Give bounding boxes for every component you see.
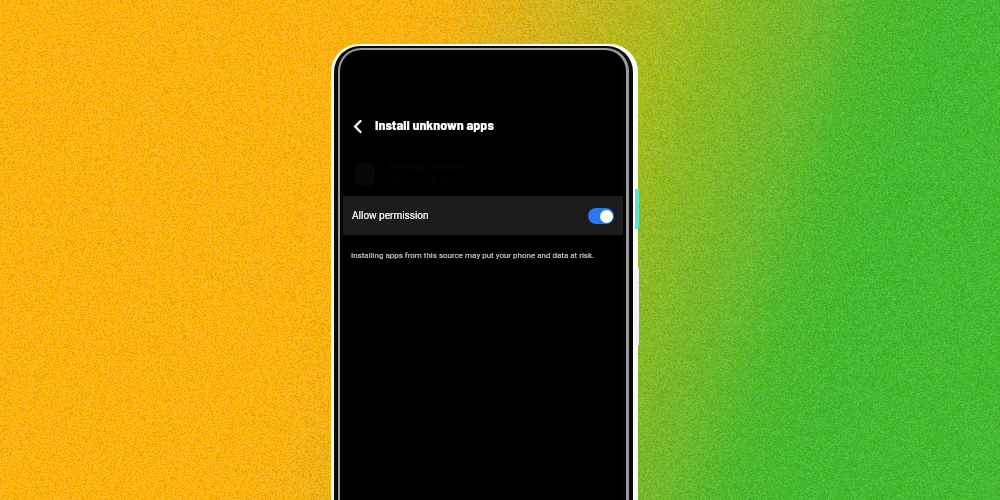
staticText: Allow permission [352,210,429,222]
button[interactable]: Allow permission [343,196,623,235]
staticText: Install unknown apps [375,116,494,133]
button[interactable]: Allow permission toggle [588,208,614,224]
button[interactable]: Back [343,110,374,142]
staticText: Installing apps from this source may put… [351,251,623,260]
